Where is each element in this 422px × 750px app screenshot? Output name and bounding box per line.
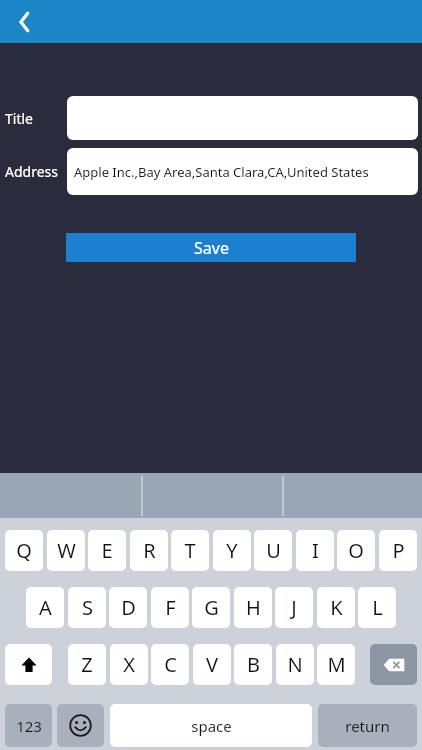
button[interactable]: N xyxy=(276,644,314,685)
button[interactable]: Shift xyxy=(5,644,52,685)
staticText: P xyxy=(392,537,405,564)
staticText: O xyxy=(348,537,364,564)
staticText: U xyxy=(266,537,281,564)
button[interactable]: O xyxy=(337,530,375,571)
staticText: N xyxy=(287,651,303,678)
button[interactable]: Emoji xyxy=(57,704,104,747)
staticText: L xyxy=(372,594,383,621)
button[interactable]: Q xyxy=(5,530,43,571)
button[interactable] xyxy=(67,96,418,140)
button[interactable] xyxy=(142,473,282,518)
staticText: I xyxy=(312,537,319,564)
staticText: B xyxy=(247,651,260,678)
button[interactable]: K xyxy=(317,587,355,628)
button[interactable]: Backspace xyxy=(370,644,417,685)
button[interactable]: D xyxy=(109,587,147,628)
staticText: R xyxy=(143,537,156,564)
button[interactable]: space xyxy=(110,704,312,747)
staticText: Title xyxy=(5,109,33,128)
button[interactable]: X xyxy=(110,644,148,685)
button[interactable]: A xyxy=(26,587,64,628)
button[interactable]: Y xyxy=(213,530,251,571)
staticText: M xyxy=(327,651,346,678)
button[interactable]: L xyxy=(358,587,396,628)
button[interactable]: M xyxy=(317,644,355,685)
button[interactable]: W xyxy=(47,530,85,571)
staticText: F xyxy=(165,594,176,621)
button[interactable]: V xyxy=(193,644,231,685)
button[interactable]: return xyxy=(318,704,417,747)
staticText: H xyxy=(246,594,261,621)
button[interactable]: Apple Inc.,Bay Area,Santa Clara,CA,Unite… xyxy=(67,148,418,195)
button[interactable]: C xyxy=(151,644,189,685)
staticText: Address xyxy=(5,162,58,181)
staticText: Apple Inc.,Bay Area,Santa Clara,CA,Unite… xyxy=(74,163,369,181)
staticText: X xyxy=(123,651,135,678)
button[interactable]: J xyxy=(275,587,313,628)
staticText: Z xyxy=(81,651,93,678)
staticText: K xyxy=(330,594,343,621)
button[interactable]: E xyxy=(88,530,126,571)
button[interactable]: B xyxy=(234,644,272,685)
button[interactable]: G xyxy=(192,587,230,628)
staticText: E xyxy=(101,537,113,564)
staticText: J xyxy=(291,594,297,621)
staticText: Y xyxy=(226,537,238,564)
button[interactable]: S xyxy=(68,587,106,628)
button[interactable]: T xyxy=(171,530,209,571)
button[interactable]: U xyxy=(254,530,292,571)
staticText: T xyxy=(184,537,196,564)
button[interactable]: Save xyxy=(66,233,356,262)
staticText: C xyxy=(164,651,177,678)
staticText: 123 xyxy=(16,716,42,736)
staticText: Q xyxy=(16,537,32,564)
staticText: V xyxy=(206,651,218,678)
staticText: Save xyxy=(194,237,229,259)
staticText: A xyxy=(39,594,52,621)
button[interactable]: R xyxy=(130,530,168,571)
button[interactable]: 123 xyxy=(5,704,52,747)
staticText: space xyxy=(191,716,232,736)
staticText: W xyxy=(57,537,76,564)
button[interactable]: F xyxy=(151,587,189,628)
button[interactable]: Z xyxy=(68,644,106,685)
button[interactable]: I xyxy=(296,530,334,571)
button[interactable]: P xyxy=(379,530,417,571)
staticText: D xyxy=(121,594,136,621)
button[interactable]: Back xyxy=(8,4,44,40)
staticText: G xyxy=(204,594,219,621)
button[interactable]: H xyxy=(234,587,272,628)
staticText: return xyxy=(345,716,390,736)
staticText: S xyxy=(82,594,93,621)
